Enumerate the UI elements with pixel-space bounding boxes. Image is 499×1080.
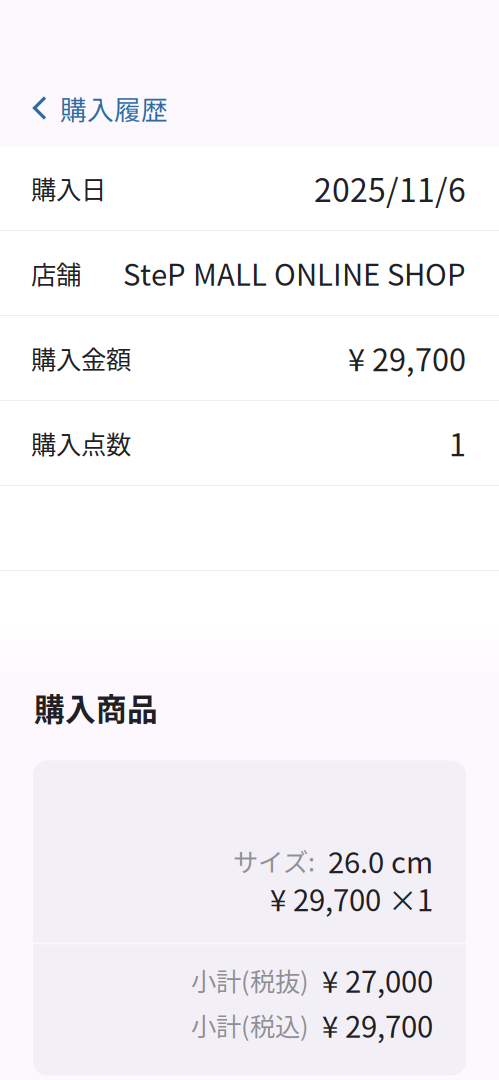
staticText: ¥ 29,700 <box>322 1004 433 1046</box>
staticText: 26.0 cm <box>328 839 433 882</box>
staticText: 購入商品 <box>34 685 158 729</box>
staticText: SteP MALL ONLINE SHOP <box>123 252 466 294</box>
staticText: 店舗 <box>31 255 81 291</box>
staticText: サイズ: <box>233 842 315 879</box>
staticText: ¥ 27,000 <box>322 959 433 1001</box>
staticText: 購入履歴 <box>60 89 168 127</box>
staticText: 小計(税込) <box>191 1007 309 1043</box>
staticText: 小計(税抜) <box>191 962 309 998</box>
staticText: 購入点数 <box>31 425 131 461</box>
staticText: 2025/11/6 <box>314 165 466 211</box>
staticText: 1 <box>449 421 466 465</box>
staticText: ¥ 29,700 <box>348 336 466 380</box>
staticText: ¥ 29,700 ×1 <box>270 877 433 920</box>
staticText: 購入金額 <box>31 340 131 376</box>
button[interactable]: 購入履歴 <box>0 80 499 136</box>
staticText: 購入日 <box>31 170 106 206</box>
